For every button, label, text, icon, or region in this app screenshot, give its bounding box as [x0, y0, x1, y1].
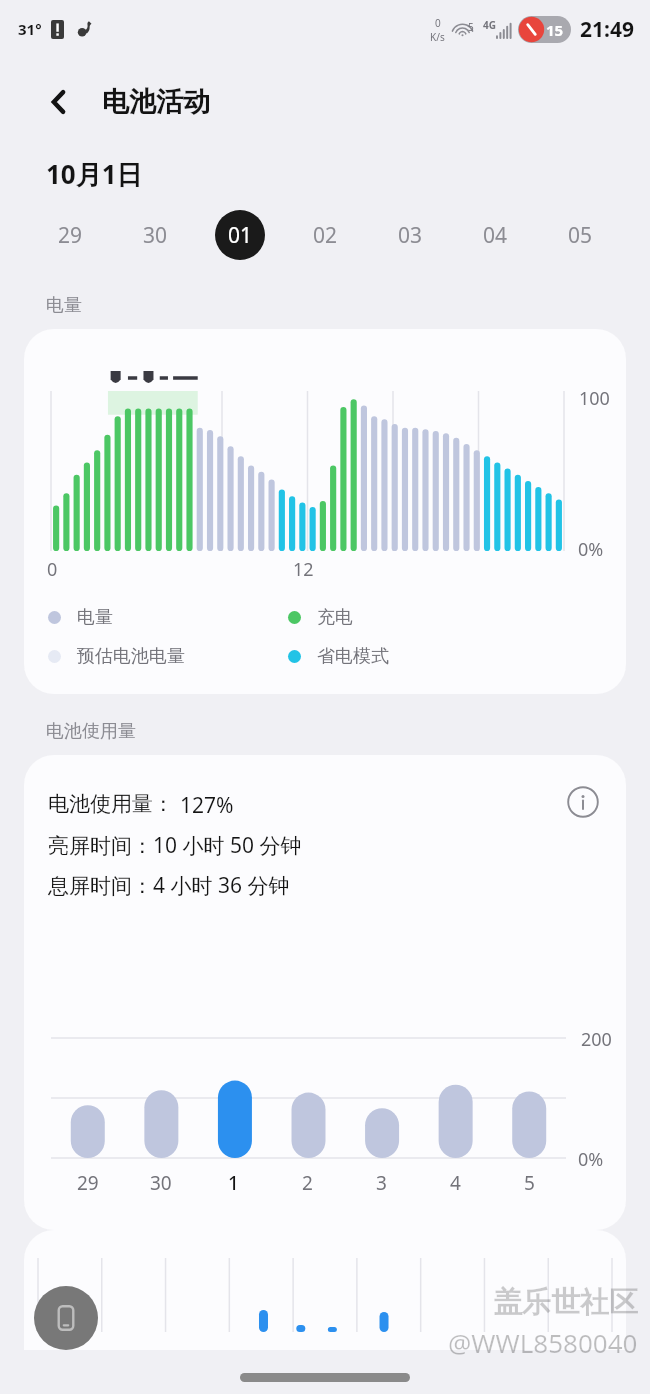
staticText: 02 [313, 221, 338, 250]
staticText: 5 [468, 20, 474, 34]
staticText: 亮屏时间：10 小时 50 分钟 [48, 831, 302, 860]
staticText: 电量 [77, 606, 113, 629]
staticText: 预估电池电量 [77, 645, 185, 668]
staticText: 省电模式 [317, 645, 389, 668]
staticText: 100 [579, 386, 610, 411]
staticText: 电池使用量： [48, 791, 174, 817]
staticText: 息屏时间：4 小时 36 分钟 [48, 871, 290, 900]
button[interactable]: 02 [300, 210, 350, 260]
staticText: 4G [483, 18, 496, 32]
button[interactable]: Back [38, 81, 80, 123]
staticText: 05 [568, 221, 593, 250]
staticText: 12 [293, 557, 314, 582]
staticText: 1 [228, 1170, 239, 1196]
staticText: 21:49 [580, 15, 634, 44]
button[interactable]: 01 [215, 210, 265, 260]
staticText: 电池活动 [102, 85, 210, 119]
staticText: 0 [47, 557, 58, 582]
button[interactable]: Device [34, 1286, 98, 1350]
staticText: 3 [376, 1170, 387, 1196]
button[interactable]: 04 [470, 210, 520, 260]
staticText: 15 [546, 20, 564, 40]
staticText: 5 [524, 1170, 535, 1196]
button[interactable]: Info [562, 781, 604, 823]
button[interactable]: 100 [24, 329, 626, 694]
button[interactable]: 03 [385, 210, 435, 260]
staticText: 电池使用量 [46, 720, 136, 743]
staticText: 127% [180, 791, 234, 820]
staticText: 29 [58, 221, 83, 250]
staticText: 30 [143, 221, 168, 250]
staticText: @WWL8580040 [448, 1325, 638, 1360]
staticText: 2 [302, 1170, 313, 1196]
button[interactable]: 05 [555, 210, 605, 260]
staticText: 04 [483, 221, 508, 250]
button[interactable]: 29 [45, 210, 95, 260]
staticText: K/s [430, 30, 445, 44]
staticText: 30 [150, 1170, 172, 1196]
staticText: 200 [581, 1027, 612, 1052]
staticText: 29 [77, 1170, 99, 1196]
staticText: 4 [450, 1170, 461, 1196]
staticText: 03 [398, 221, 423, 250]
staticText: 0 [435, 16, 441, 30]
staticText: 0% [578, 1147, 604, 1172]
staticText: 10月1日 [46, 156, 143, 192]
staticText: 0% [578, 537, 604, 562]
staticText: 电量 [46, 294, 82, 317]
staticText: 充电 [317, 606, 353, 629]
staticText: 31° [18, 19, 42, 39]
button[interactable]: 30 [130, 210, 180, 260]
staticText: 01 [228, 221, 253, 250]
staticText: 盖乐世社区 [493, 1284, 638, 1321]
